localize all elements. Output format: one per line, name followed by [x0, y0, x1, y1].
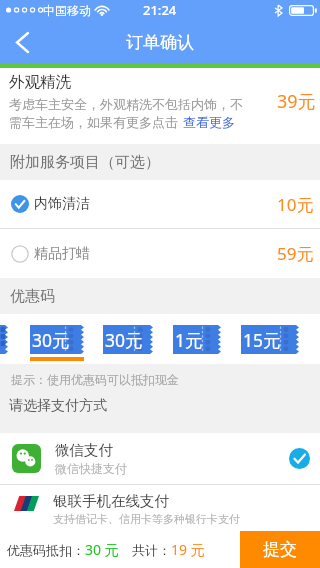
- staticText: 中国移动: [43, 3, 91, 18]
- staticText: 19 元: [171, 540, 205, 559]
- staticText: 附加服务项目（可选）: [10, 153, 160, 172]
- button[interactable]: Back: [0, 20, 44, 64]
- staticText: 30 元: [85, 540, 119, 559]
- button[interactable]: 提交: [240, 531, 320, 568]
- staticText: 银联手机在线支付: [53, 492, 169, 510]
- staticText: 优惠码: [10, 287, 55, 306]
- staticText: 1元: [175, 328, 203, 352]
- button[interactable]: 银联手机在线支付: [0, 485, 320, 531]
- staticText: 39元: [277, 89, 316, 114]
- button[interactable]: 微信支付: [0, 433, 320, 484]
- button[interactable]: 1元: [173, 325, 221, 354]
- staticText: 优惠码抵扣：: [7, 542, 85, 558]
- staticText: 考虑车主安全，外观精洗不包括内饰，不: [9, 96, 243, 112]
- staticText: 提示：使用优惠码可以抵扣现金: [11, 372, 179, 387]
- button[interactable]: 30元: [103, 325, 153, 354]
- staticText: 10元: [277, 193, 314, 216]
- button[interactable]: 内饰清洁: [0, 180, 320, 228]
- staticText: 15元: [243, 328, 281, 352]
- staticText: 需车主在场，如果有更多点击: [9, 114, 178, 130]
- staticText: 21:24: [143, 1, 177, 19]
- button[interactable]: 15元: [241, 325, 299, 354]
- staticText: 30元: [105, 328, 143, 352]
- staticText: 30元: [32, 328, 70, 352]
- staticText: 共计：: [132, 542, 171, 558]
- staticText: 59元: [277, 242, 314, 265]
- staticText: 提交: [263, 539, 297, 560]
- button[interactable]: 精品打蜡: [0, 229, 320, 278]
- button[interactable]: 30元: [30, 325, 84, 354]
- staticText: 外观精洗: [9, 72, 71, 92]
- staticText: 精品打蜡: [34, 245, 90, 263]
- staticText: 支持借记卡、信用卡等多种银行卡支付: [53, 512, 240, 526]
- staticText: 请选择支付方式: [9, 397, 107, 415]
- staticText: 订单确认: [126, 32, 194, 53]
- staticText: 微信支付: [55, 441, 113, 459]
- button[interactable]: 查看更多: [183, 114, 235, 130]
- staticText: 内饰清洁: [34, 195, 90, 213]
- staticText: 微信快捷支付: [55, 461, 127, 476]
